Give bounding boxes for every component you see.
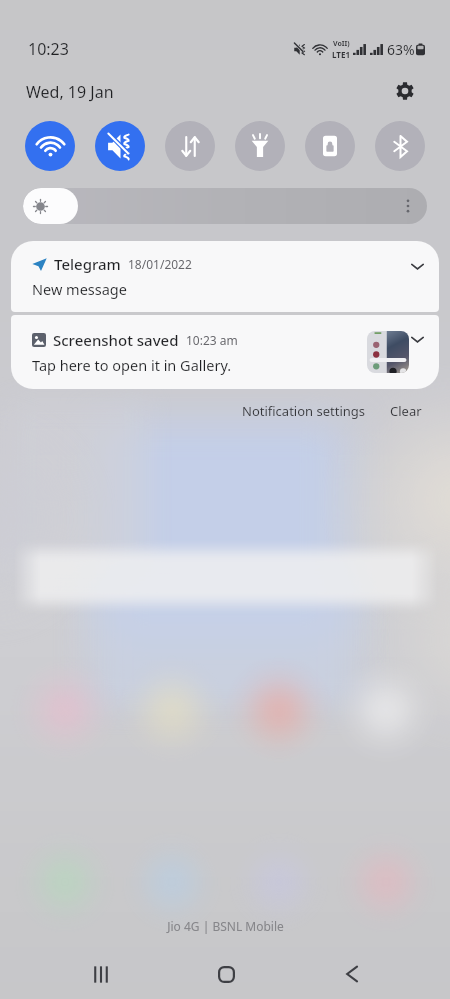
button[interactable]: Telegram <box>11 241 439 312</box>
button[interactable]: Wi-Fi <box>25 121 75 171</box>
button[interactable]: Mobile data <box>165 121 215 171</box>
staticText: 10:23 am <box>186 332 238 348</box>
button[interactable]: Expand notification <box>406 328 428 350</box>
staticText: Screenshot saved <box>53 330 179 350</box>
staticText: Jio 4G | BSNL Mobile <box>167 918 284 934</box>
button[interactable]: Auto rotate <box>305 121 355 171</box>
staticText: Telegram <box>54 254 121 274</box>
staticText: Clear <box>390 402 422 420</box>
staticText: Notification settings <box>242 402 366 420</box>
staticText: LTE1 <box>332 49 350 60</box>
button[interactable]: Expand notification <box>406 255 428 277</box>
staticText: Tap here to open it in Gallery. <box>32 355 232 375</box>
staticText: 10:23 <box>28 38 69 60</box>
button[interactable]: Mute <box>95 121 145 171</box>
button[interactable]: Home <box>204 952 248 996</box>
staticText: Wed, 19 Jan <box>26 81 114 103</box>
staticText: 18/01/2022 <box>128 256 192 272</box>
staticText: VoII) <box>333 39 350 49</box>
staticText: 63% <box>387 40 415 59</box>
button[interactable]: Bluetooth <box>375 121 425 171</box>
button[interactable]: Brightness options <box>23 188 427 224</box>
button[interactable]: Settings <box>388 74 422 108</box>
button[interactable]: Back <box>330 952 374 996</box>
button[interactable]: Notification settings <box>238 396 370 426</box>
button[interactable]: Clear <box>386 396 426 426</box>
button[interactable]: Brightness options <box>398 196 418 216</box>
staticText: New message <box>32 279 127 299</box>
button[interactable]: Flashlight <box>235 121 285 171</box>
button[interactable]: Recent apps <box>79 952 123 996</box>
button[interactable]: Screenshot saved <box>11 315 439 389</box>
